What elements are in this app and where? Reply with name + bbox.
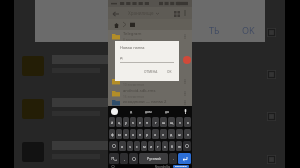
- button[interactable]: Shift: [109, 141, 118, 151]
- button[interactable]: Enter: [178, 153, 191, 164]
- button[interactable]: [129, 21, 136, 28]
- button[interactable]: т: [155, 141, 161, 151]
- button[interactable]: с: [134, 141, 140, 151]
- button[interactable]: и: [148, 141, 154, 151]
- staticText: ф: [111, 132, 114, 137]
- staticText: в: [125, 132, 128, 137]
- button[interactable]: Row menu: [181, 78, 188, 85]
- button[interactable]: п: [137, 129, 143, 139]
- button[interactable]: ш: [160, 117, 167, 127]
- button[interactable]: я: [119, 141, 126, 151]
- button[interactable]: исходники — папка 2: [108, 99, 192, 106]
- button[interactable]: в: [123, 129, 129, 139]
- staticText: ч: [129, 144, 132, 149]
- staticText: Telegram: [123, 31, 142, 37]
- button[interactable]: ф: [109, 129, 115, 139]
- staticText: р: [146, 132, 149, 137]
- staticText: е: [139, 120, 141, 125]
- button[interactable]: android-sdk-rms: [108, 87, 192, 99]
- button[interactable]: ч: [127, 141, 133, 151]
- staticText: ,: [124, 156, 125, 161]
- button[interactable]: primorus: [108, 75, 192, 87]
- staticText: н: [146, 120, 149, 125]
- button[interactable]: Emoji: [129, 153, 138, 164]
- button[interactable]: Row menu: [181, 33, 188, 40]
- button[interactable]: д: [168, 129, 175, 139]
- button[interactable]: м: [141, 141, 147, 151]
- staticText: ОТМЕНА: [144, 70, 158, 74]
- staticText: з: [179, 120, 181, 125]
- button[interactable]: Русский: [139, 153, 168, 164]
- button[interactable]: Google: [111, 108, 118, 115]
- staticText: э: [187, 132, 189, 137]
- button[interactable]: Back: [111, 9, 120, 18]
- button[interactable]: Grid view: [172, 9, 181, 18]
- staticText: щ: [170, 120, 174, 125]
- staticText: primorus: [123, 76, 142, 82]
- button[interactable]: ОТМЕНА: [142, 69, 160, 75]
- staticText: х: [187, 120, 189, 125]
- button[interactable]: Telegram: [108, 30, 192, 42]
- staticText: ОК: [167, 70, 172, 74]
- button[interactable]: к: [130, 117, 136, 127]
- button[interactable]: Хранилище: [128, 10, 159, 16]
- staticText: м: [143, 144, 146, 149]
- button[interactable]: Home: [111, 165, 115, 168]
- button[interactable]: Row menu: [181, 99, 188, 106]
- button[interactable]: ц: [116, 117, 122, 127]
- staticText: о: [154, 132, 157, 137]
- staticText: ж: [178, 132, 181, 137]
- button[interactable]: Row menu: [181, 90, 188, 97]
- staticText: android-sdk-rms: [123, 88, 156, 94]
- button[interactable]: Backspace: [183, 141, 191, 151]
- staticText: ь: [164, 144, 166, 149]
- staticText: ю: [178, 144, 181, 149]
- button[interactable]: у: [123, 117, 129, 127]
- button[interactable]: з: [176, 117, 183, 127]
- button[interactable]: ь: [162, 141, 168, 151]
- staticText: ?1␣: [111, 156, 117, 161]
- staticText: д: [130, 109, 133, 114]
- staticText: й: [111, 120, 114, 125]
- button[interactable]: л: [160, 129, 167, 139]
- button[interactable]: н: [144, 117, 151, 127]
- staticText: дом: [145, 109, 152, 114]
- button[interactable]: щ: [168, 117, 175, 127]
- button[interactable]: Home: [112, 21, 120, 29]
- button[interactable]: ж: [176, 129, 183, 139]
- staticText: ы: [118, 132, 121, 137]
- button[interactable]: б: [169, 141, 175, 151]
- button[interactable]: а: [130, 129, 136, 139]
- staticText: л: [162, 132, 165, 137]
- button[interactable]: ы: [116, 129, 122, 139]
- staticText: OK: [242, 24, 255, 36]
- button[interactable]: ю: [176, 141, 182, 151]
- button[interactable]: р: [144, 129, 151, 139]
- button[interactable]: ОК: [165, 69, 174, 75]
- staticText: 10 элементов: [123, 83, 144, 87]
- button[interactable]: ?1␣: [109, 153, 119, 164]
- button[interactable]: й: [109, 117, 115, 127]
- button[interactable]: .: [169, 153, 177, 164]
- staticText: г: [155, 120, 157, 125]
- button[interactable]: Voice input: [182, 108, 189, 115]
- button[interactable]: э: [184, 129, 191, 139]
- button[interactable]: х: [184, 117, 191, 127]
- staticText: Хранилище: [128, 10, 154, 16]
- staticText: я: [121, 144, 124, 149]
- staticText: б: [171, 144, 174, 149]
- staticText: т: [157, 144, 159, 149]
- button[interactable]: г: [152, 117, 159, 127]
- button[interactable]: More options: [181, 9, 189, 17]
- staticText: исходники — папка 2: [123, 99, 167, 105]
- staticText: а: [132, 132, 134, 137]
- button[interactable]: д: [120, 55, 174, 61]
- staticText: с: [136, 144, 138, 149]
- button[interactable]: о: [152, 129, 159, 139]
- staticText: ц: [118, 120, 121, 125]
- button[interactable]: New: [183, 56, 191, 64]
- staticText: у: [125, 120, 127, 125]
- staticText: и: [150, 144, 153, 149]
- button[interactable]: ,: [120, 153, 128, 164]
- button[interactable]: е: [137, 117, 143, 127]
